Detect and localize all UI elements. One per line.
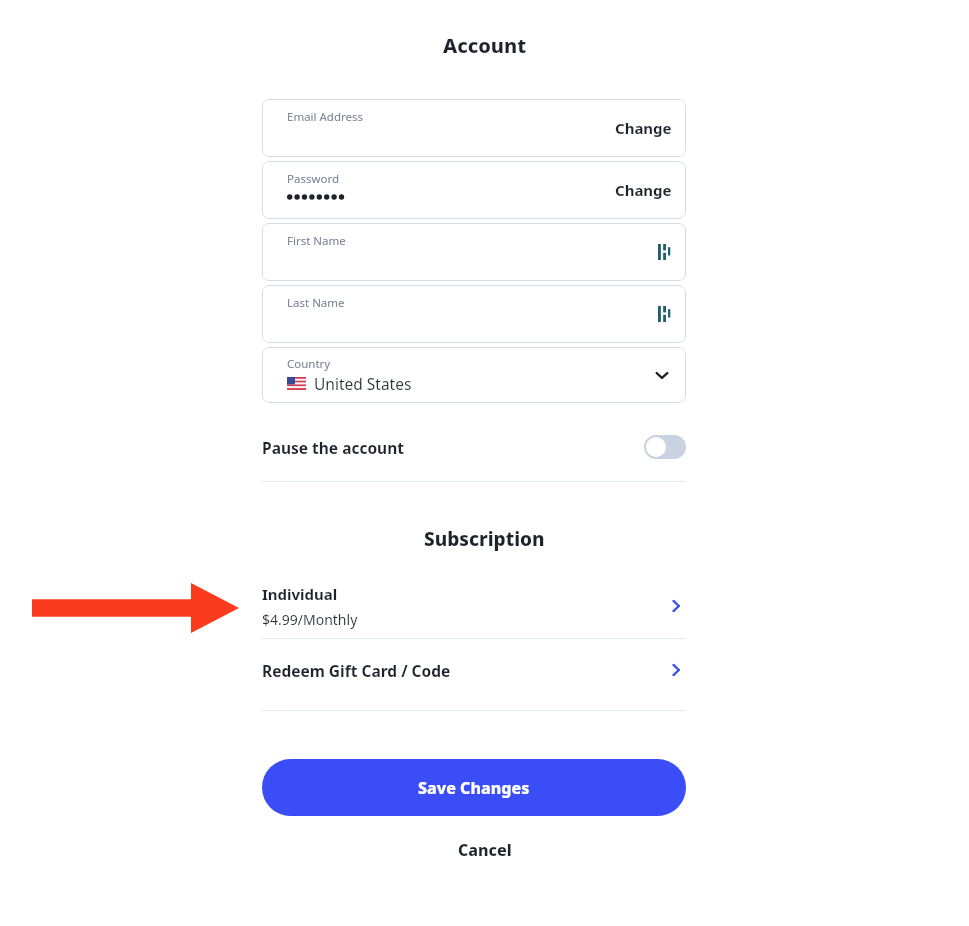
staticText: Password bbox=[287, 171, 340, 187]
staticText: Change bbox=[615, 180, 672, 200]
staticText: Email Address bbox=[287, 109, 364, 125]
staticText: Save Changes bbox=[418, 777, 530, 799]
button[interactable]: Save Changes bbox=[262, 759, 686, 816]
button[interactable]: Change bbox=[603, 109, 684, 147]
staticText: Last Name bbox=[287, 295, 345, 311]
button[interactable]: Individual bbox=[262, 580, 686, 632]
staticText: Pause the account bbox=[262, 437, 404, 458]
staticText: Cancel bbox=[458, 839, 512, 861]
staticText: United States bbox=[314, 373, 412, 394]
staticText: Individual bbox=[262, 584, 338, 604]
staticText: First Name bbox=[287, 233, 346, 249]
button[interactable]: Country bbox=[262, 347, 686, 403]
button[interactable]: Autofill last name bbox=[652, 302, 676, 326]
button[interactable]: Autofill first name bbox=[652, 240, 676, 264]
staticText: Subscription bbox=[424, 526, 545, 552]
button[interactable]: Pause the account bbox=[262, 425, 686, 469]
staticText: Change bbox=[615, 118, 672, 138]
button[interactable]: Pause the account bbox=[644, 435, 686, 459]
staticText: Redeem Gift Card / Code bbox=[262, 660, 451, 681]
staticText: Account bbox=[443, 32, 527, 59]
staticText: Country bbox=[287, 356, 331, 372]
button[interactable]: Cancel bbox=[442, 833, 528, 867]
button[interactable]: Change bbox=[603, 171, 684, 209]
button[interactable]: Redeem Gift Card / Code bbox=[262, 639, 686, 701]
staticText: $4.99/Monthly bbox=[262, 610, 358, 629]
